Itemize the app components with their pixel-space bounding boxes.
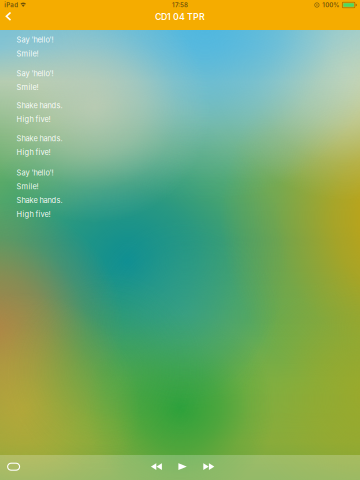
button[interactable]: Repeat (0, 457, 28, 477)
staticText: Say 'hello'! (16, 35, 53, 44)
staticText: Say 'hello'! (16, 168, 53, 177)
staticText: 100% (322, 1, 339, 9)
staticText: Smile! (16, 83, 38, 92)
button[interactable]: Play (173, 458, 192, 475)
button[interactable]: Next (198, 458, 219, 475)
button[interactable]: Back (0, 4, 25, 25)
staticText: 17:58 (172, 1, 188, 9)
staticText: High five! (16, 115, 50, 124)
staticText: iPad (4, 1, 18, 9)
staticText: Smile! (16, 49, 38, 58)
staticText: Say 'hello'! (16, 69, 53, 78)
staticText: Shake hands. (16, 101, 62, 110)
staticText: CD1 04 TPR (155, 11, 205, 22)
staticText: High five! (16, 148, 50, 157)
staticText: Shake hands. (16, 196, 62, 205)
button[interactable]: Previous (146, 458, 167, 475)
staticText: Shake hands. (16, 134, 62, 143)
staticText: Smile! (16, 182, 38, 191)
staticText: High five! (16, 210, 50, 219)
